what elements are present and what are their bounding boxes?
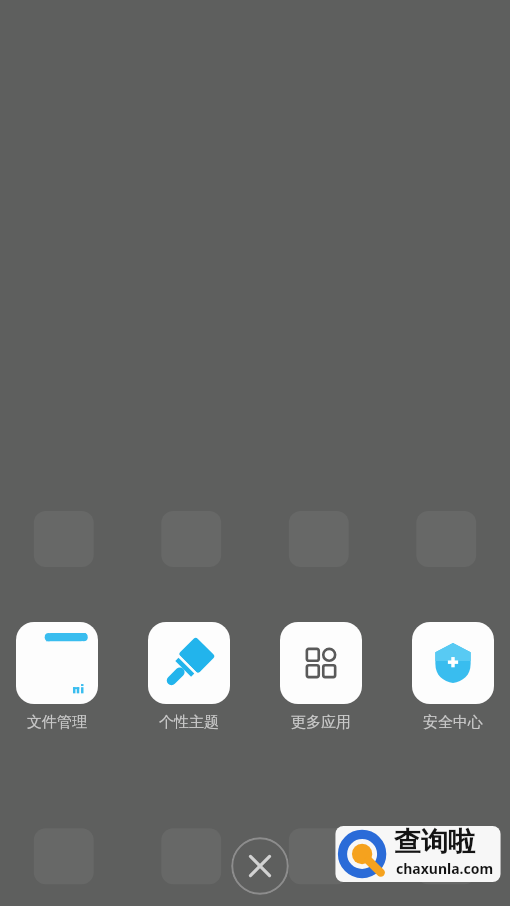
button[interactable]: Close [231,837,289,895]
button[interactable]: 更多应用 [280,622,362,732]
staticText: 文件管理 [27,713,87,732]
button[interactable]: 个性主题 [148,622,230,732]
staticText: chaxunla.com [396,859,494,878]
button[interactable]: 安全中心 [412,622,494,732]
staticText: 个性主题 [159,713,219,732]
staticText: 更多应用 [291,713,351,732]
staticText: 安全中心 [423,713,483,732]
button[interactable]: 文件管理 [16,622,98,732]
staticText: 查询啦 [394,825,475,859]
